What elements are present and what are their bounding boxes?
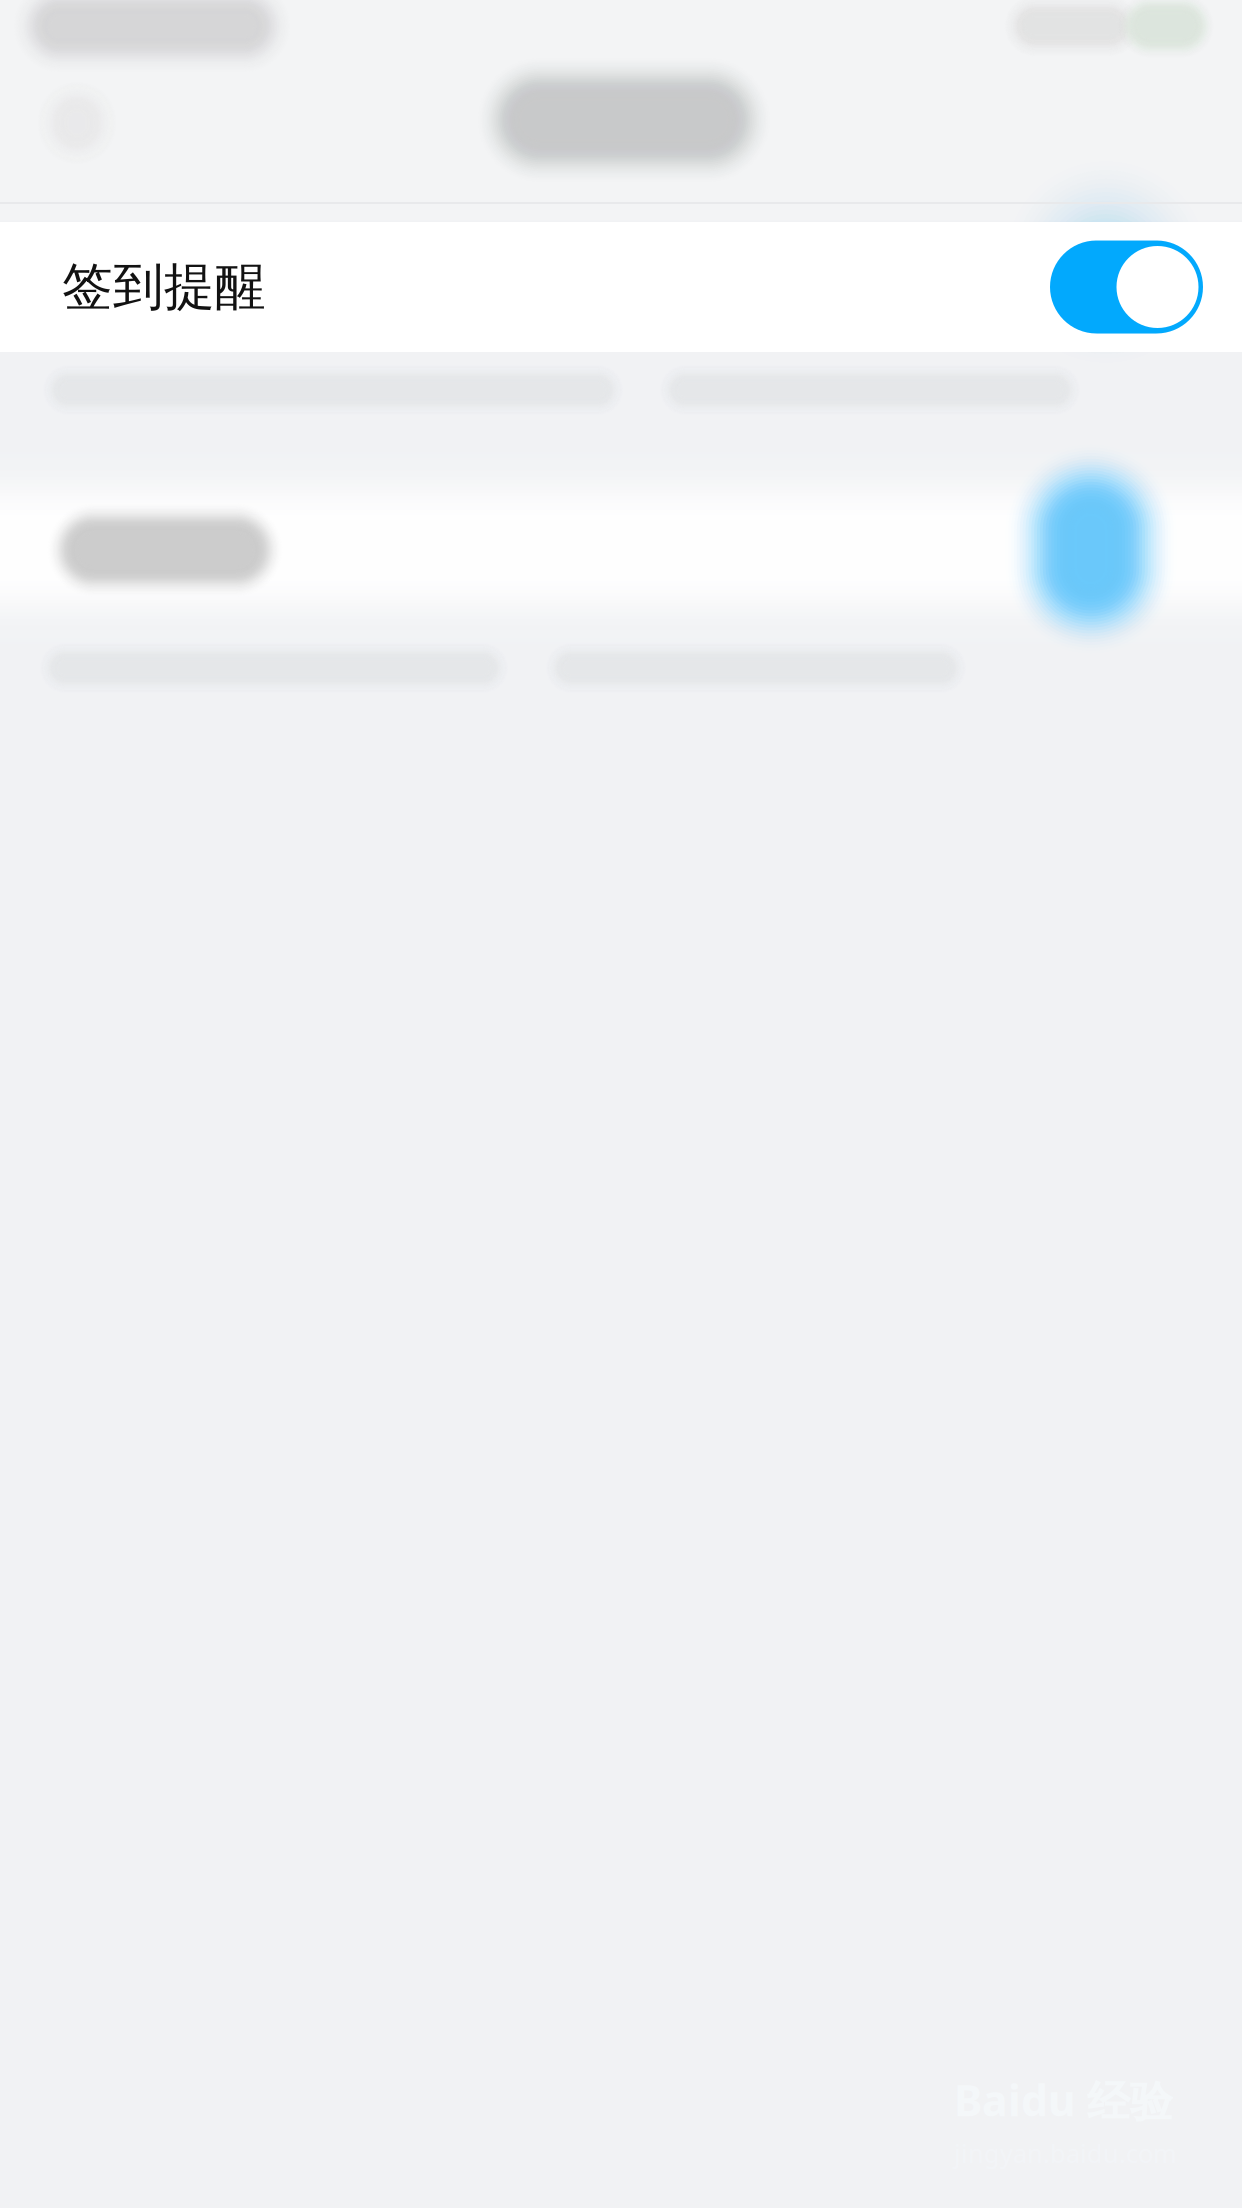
button[interactable]: Back: [18, 64, 136, 182]
staticText: 签到提醒: [62, 256, 266, 318]
button[interactable]: 签到提醒: [0, 222, 1242, 352]
